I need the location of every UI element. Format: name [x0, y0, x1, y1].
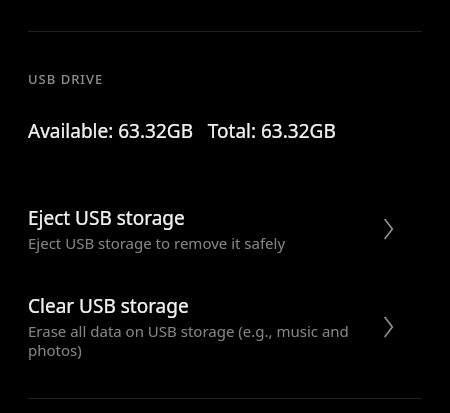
staticText: Eject USB storage to remove it safely: [28, 233, 286, 253]
staticText: USB DRIVE: [28, 70, 104, 88]
staticText: Available: 63.32GB Total: 63.32GB: [28, 118, 336, 144]
button[interactable]: Clear USB storage: [0, 289, 450, 364]
button[interactable]: Eject USB storage: [0, 201, 450, 257]
staticText: Eject USB storage: [28, 205, 185, 231]
staticText: Clear USB storage: [28, 293, 189, 319]
staticText: Erase all data on USB storage (e.g., mus…: [28, 321, 363, 360]
